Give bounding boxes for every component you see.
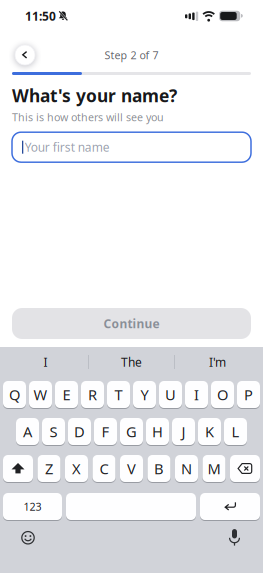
staticText: G (126, 422, 137, 441)
staticText: P (244, 385, 253, 404)
button[interactable]: H (146, 418, 169, 445)
button[interactable]: Space (66, 493, 196, 520)
staticText: T (114, 385, 122, 404)
button[interactable]: B (147, 455, 170, 482)
staticText: Z (45, 459, 53, 478)
staticText: C (99, 459, 108, 478)
button[interactable]: L (224, 418, 247, 445)
button[interactable]: N (175, 455, 198, 482)
staticText: M (207, 459, 220, 478)
staticText: 123 (23, 499, 41, 514)
button[interactable]: O (211, 381, 234, 408)
staticText: A (23, 422, 32, 441)
staticText: F (101, 422, 109, 441)
button[interactable]: P (237, 381, 260, 408)
staticText: W (33, 385, 47, 404)
button[interactable]: V (120, 455, 143, 482)
button[interactable]: Continue (12, 308, 251, 339)
button[interactable]: Dictation (229, 529, 240, 546)
staticText: I'm (209, 354, 226, 370)
staticText: K (205, 422, 214, 441)
button[interactable]: G (120, 418, 143, 445)
staticText: N (181, 459, 192, 478)
button[interactable]: M (202, 455, 225, 482)
button[interactable]: I (3, 347, 88, 377)
button[interactable]: Z (37, 455, 60, 482)
staticText: X (72, 459, 81, 478)
staticText: I (44, 354, 48, 370)
staticText: Continue (103, 315, 159, 331)
staticText: H (152, 422, 163, 441)
staticText: D (74, 422, 85, 441)
staticText: E (62, 385, 70, 404)
button[interactable]: W (29, 381, 52, 408)
button[interactable]: Delete (230, 455, 260, 482)
button[interactable]: Y (133, 381, 156, 408)
button[interactable]: E (55, 381, 78, 408)
staticText: Y (140, 385, 148, 404)
button[interactable]: F (94, 418, 117, 445)
button[interactable]: Return (200, 493, 260, 520)
button[interactable]: Your first name (12, 132, 251, 162)
staticText: I (194, 385, 199, 404)
staticText: Your first name (25, 139, 110, 155)
staticText: O (217, 385, 228, 404)
button[interactable]: Q (3, 381, 26, 408)
staticText: R (88, 385, 97, 404)
button[interactable]: I (185, 381, 208, 408)
button[interactable]: A (16, 418, 39, 445)
button[interactable]: The (89, 347, 174, 377)
staticText: V (127, 459, 136, 478)
staticText: What's your name? (12, 84, 177, 107)
staticText: Q (9, 385, 20, 404)
staticText: Step 2 of 7 (104, 48, 158, 62)
button[interactable]: R (81, 381, 104, 408)
button[interactable]: 123 (3, 493, 62, 520)
button[interactable]: Emoji (21, 531, 35, 545)
staticText: S (49, 422, 57, 441)
staticText: B (154, 459, 164, 478)
staticText: This is how others will see you (12, 110, 164, 124)
staticText: J (181, 422, 185, 441)
button[interactable]: Back (15, 45, 35, 65)
button[interactable]: T (107, 381, 130, 408)
button[interactable]: I'm (175, 347, 260, 377)
staticText: 11:50 (25, 8, 56, 24)
button[interactable]: X (65, 455, 88, 482)
staticText: The (121, 354, 142, 370)
button[interactable]: Shift (3, 455, 33, 482)
button[interactable]: K (198, 418, 221, 445)
button[interactable]: U (159, 381, 182, 408)
staticText: U (165, 385, 176, 404)
button[interactable]: C (92, 455, 115, 482)
button[interactable]: S (42, 418, 65, 445)
staticText: L (231, 422, 239, 441)
button[interactable]: J (172, 418, 195, 445)
button[interactable]: D (68, 418, 91, 445)
